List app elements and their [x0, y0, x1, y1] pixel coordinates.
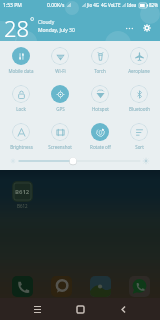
button[interactable]: Home [71, 300, 89, 318]
staticText: Idea [127, 2, 137, 8]
staticText: 82% [149, 2, 158, 8]
staticText: Aeroplane [128, 68, 150, 74]
staticText: Lock [16, 106, 26, 112]
button[interactable]: Bluetooth [120, 85, 158, 112]
button[interactable]: B612 [11, 181, 34, 209]
button[interactable]: Torch [81, 47, 119, 74]
button[interactable]: App [12, 276, 33, 297]
button[interactable]: More options [122, 21, 136, 35]
staticText: Jio 4G [87, 2, 100, 8]
staticText: ° [30, 14, 35, 28]
staticText: GPS [56, 106, 65, 112]
button[interactable]: Settings [140, 21, 154, 35]
button[interactable]: Lock [2, 85, 40, 112]
button[interactable]: Sort [120, 123, 158, 150]
staticText: Rotate off [90, 144, 111, 150]
staticText: Mobile data [8, 68, 34, 74]
button[interactable]: Wi-Fi [41, 47, 79, 74]
staticText: 1:53 PM [3, 2, 22, 9]
staticText: 0.00K/s [47, 2, 65, 9]
button[interactable]: App [129, 276, 150, 297]
staticText: Wi-Fi [55, 68, 66, 74]
button[interactable]: GPS [41, 85, 79, 112]
button[interactable]: Aeroplane [120, 47, 158, 74]
staticText: Screenshot [48, 144, 72, 150]
staticText: Bluetooth [129, 106, 150, 112]
staticText: 4G VoLTE [101, 2, 121, 8]
button[interactable]: Rotate off [81, 123, 119, 150]
button[interactable]: Back [114, 300, 132, 318]
staticText: B612 [15, 188, 30, 196]
staticText: Sort [135, 144, 144, 150]
button[interactable]: App [90, 276, 111, 297]
staticText: Brightness [10, 144, 33, 150]
button[interactable]: Hotspot [81, 85, 119, 112]
staticText: Torch [94, 68, 106, 74]
staticText: B612 [17, 203, 28, 209]
button[interactable]: Mobile data [2, 47, 40, 74]
staticText: 28 [4, 13, 30, 43]
staticText: Cloudy [38, 19, 55, 26]
button[interactable]: Recents [28, 300, 46, 318]
button[interactable]: Screenshot [41, 123, 79, 150]
button[interactable]: Brightness slider [0, 153, 160, 169]
button[interactable]: Brightness [2, 123, 40, 150]
staticText: Monday, July 30 [38, 27, 75, 34]
staticText: Hotspot [92, 106, 109, 112]
button[interactable]: App [51, 276, 72, 297]
